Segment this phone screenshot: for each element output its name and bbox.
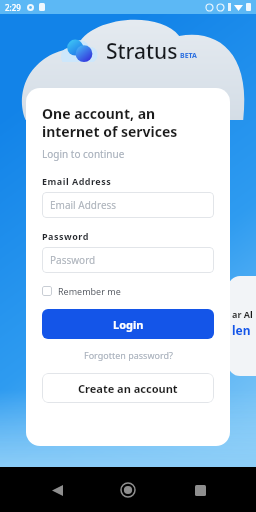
staticText: Password [42,230,89,242]
button[interactable]: Forgotten password? [42,349,214,361]
staticText: One account, an internet of services [42,104,178,141]
staticText: Login to continue [42,147,125,161]
button[interactable]: Email Address [42,192,214,218]
button[interactable]: Recent apps [185,475,215,505]
staticText: ar Al [232,308,253,320]
button[interactable]: Login [42,309,214,339]
staticText: len [232,322,251,338]
button[interactable]: Back [42,475,72,505]
staticText: Login [113,317,144,332]
staticText: BETA [180,51,197,61]
staticText: Create an account [78,381,178,396]
button[interactable]: Create an account [42,373,214,403]
staticText: Email Address [50,198,117,212]
staticText: Email Address [42,175,112,187]
staticText: Stratus [106,37,178,66]
button[interactable]: Password [42,247,214,273]
button[interactable]: Remember me [42,285,121,297]
button[interactable]: Home [113,475,143,505]
staticText: 2:29 [5,2,21,13]
staticText: Remember me [58,285,121,297]
staticText: Password [50,253,96,267]
staticText: Forgotten password? [84,349,173,361]
